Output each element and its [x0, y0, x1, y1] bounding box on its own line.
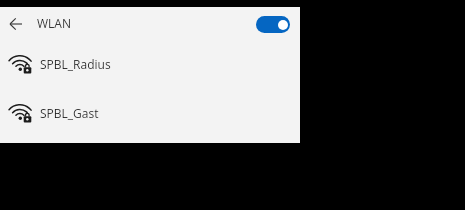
button[interactable]: SPBL_Radius — [0, 41, 300, 89]
staticText: WLAN — [37, 15, 71, 31]
button[interactable]: WLAN on — [256, 16, 290, 33]
button[interactable]: SPBL_Gast — [0, 90, 300, 138]
staticText: SPBL_Radius — [40, 56, 111, 72]
button[interactable]: Back — [4, 12, 28, 36]
staticText: SPBL_Gast — [40, 105, 99, 121]
